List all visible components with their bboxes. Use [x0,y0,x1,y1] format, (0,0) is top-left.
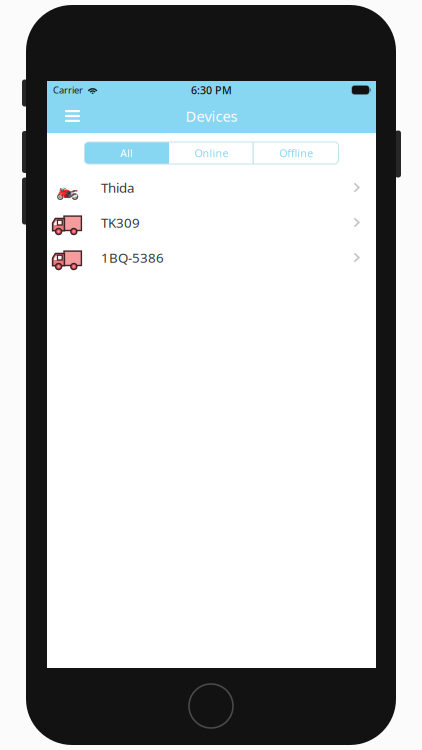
staticText: Offline [279,146,313,160]
button[interactable]: Online [169,142,254,164]
button[interactable]: Menu [47,101,92,131]
staticText: 1BQ-5386 [101,249,164,266]
staticText: 6:30 PM [191,83,232,97]
staticText: 🏍️ [55,179,78,201]
staticText: Carrier [53,84,83,96]
button[interactable]: 1BQ-5386 [47,240,376,275]
staticText: Thida [101,179,134,196]
button[interactable]: Offline [254,142,338,164]
button[interactable]: TK309 [47,205,376,240]
staticText: TK309 [101,214,140,231]
staticText: Online [194,146,228,160]
staticText: All [120,146,133,160]
button[interactable]: All [84,142,169,164]
staticText: Devices [185,106,237,126]
button[interactable]: 🏍️ [47,170,376,205]
